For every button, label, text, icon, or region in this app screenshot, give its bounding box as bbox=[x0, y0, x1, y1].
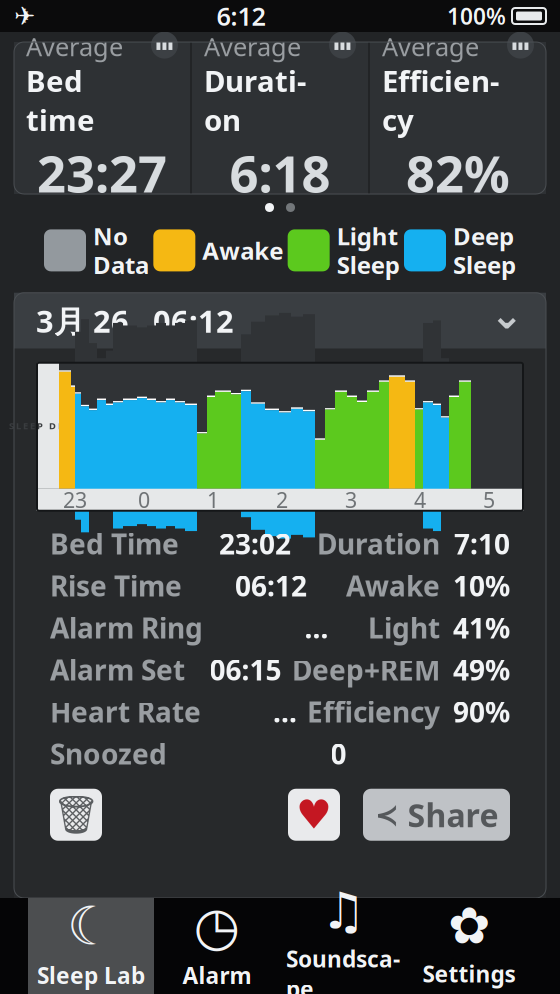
staticText: Bed Time bbox=[50, 525, 179, 562]
button[interactable]: ☾ bbox=[28, 892, 154, 994]
staticText: Efficiency bbox=[382, 61, 499, 139]
staticText: Sleep bbox=[337, 249, 400, 281]
staticText: ✈ bbox=[14, 2, 35, 30]
staticText: Alarm Set bbox=[50, 651, 185, 688]
staticText: Heart Rate bbox=[50, 693, 201, 730]
staticText: Duration bbox=[204, 61, 306, 139]
staticText: 2 bbox=[276, 486, 288, 514]
staticText: Alarm Ring bbox=[50, 609, 203, 646]
staticText: 0 bbox=[138, 486, 150, 514]
button[interactable]: Favorite bbox=[288, 789, 340, 841]
staticText: Sleep Lab bbox=[37, 960, 145, 990]
staticText: Awake bbox=[346, 567, 440, 604]
staticText: 6:18 bbox=[229, 139, 330, 206]
staticText: Soundscape bbox=[286, 944, 400, 994]
staticText: Deep bbox=[453, 220, 514, 252]
staticText: Alarm bbox=[182, 960, 251, 990]
staticText: No bbox=[93, 220, 128, 252]
staticText: 49% bbox=[453, 651, 510, 688]
staticText: 4 bbox=[414, 486, 426, 514]
staticText: ☾ bbox=[67, 896, 115, 956]
staticText: Share bbox=[407, 793, 498, 836]
staticText: Bed time bbox=[26, 61, 95, 139]
staticText: Light bbox=[368, 609, 440, 646]
staticText: Deep+REM bbox=[292, 651, 440, 688]
button[interactable]: Delete bbox=[50, 789, 102, 841]
staticText: Average bbox=[204, 30, 301, 63]
staticText: Awake bbox=[202, 234, 283, 266]
staticText: Average bbox=[382, 30, 479, 63]
staticText: ... bbox=[273, 693, 297, 730]
staticText: 90% bbox=[453, 693, 510, 730]
staticText: 3月 26 06:12 bbox=[36, 300, 234, 341]
staticText: ✿ bbox=[448, 897, 490, 955]
staticText: Settings bbox=[422, 959, 515, 989]
staticText: ♥ bbox=[296, 792, 332, 837]
staticText: ♫ bbox=[320, 882, 365, 940]
staticText: 41% bbox=[453, 609, 510, 646]
staticText: 06:12 bbox=[235, 567, 307, 604]
staticText: ▮▮▮ bbox=[511, 39, 529, 51]
staticText: Data bbox=[93, 249, 149, 281]
staticText: ≺ bbox=[374, 798, 399, 831]
staticText: 7:10 bbox=[454, 525, 510, 562]
staticText: S L E E P D E P T H bbox=[9, 419, 87, 432]
staticText: 3 bbox=[345, 486, 357, 514]
staticText: 23:27 bbox=[37, 139, 167, 206]
staticText: ⌄ bbox=[490, 292, 524, 337]
staticText: Snoozed bbox=[50, 735, 167, 772]
staticText: 0 bbox=[330, 735, 346, 772]
staticText: 23 bbox=[63, 486, 87, 514]
staticText: 10% bbox=[453, 567, 510, 604]
button[interactable]: 3月 26 06:12 bbox=[14, 292, 546, 349]
button[interactable]: ◷ bbox=[154, 892, 280, 994]
button[interactable]: ♫ bbox=[280, 878, 406, 994]
staticText: 6:12 bbox=[216, 0, 265, 33]
staticText: ... bbox=[304, 609, 328, 646]
staticText: 06:15 bbox=[209, 651, 281, 688]
button[interactable]: ≺ bbox=[363, 789, 510, 841]
staticText: Duration bbox=[317, 525, 440, 562]
staticText: Efficiency bbox=[307, 693, 440, 730]
staticText: 23:02 bbox=[219, 525, 291, 562]
staticText: Rise Time bbox=[50, 567, 182, 604]
button[interactable]: Average bbox=[14, 20, 190, 216]
staticText: 1 bbox=[207, 486, 219, 514]
staticText: 5 bbox=[483, 486, 495, 514]
staticText: Average bbox=[26, 30, 123, 63]
staticText: ▮▮▮ bbox=[333, 39, 351, 51]
staticText: Light bbox=[337, 220, 398, 252]
staticText: ◷ bbox=[193, 896, 240, 956]
staticText: 🗑 bbox=[52, 793, 99, 836]
staticText: 100% bbox=[447, 1, 506, 31]
button[interactable]: Average bbox=[370, 20, 546, 216]
staticText: ▮▮▮ bbox=[155, 39, 173, 51]
staticText: 82% bbox=[406, 139, 510, 206]
button[interactable]: Average bbox=[192, 20, 368, 216]
staticText: Sleep bbox=[453, 249, 516, 281]
button[interactable]: ✿ bbox=[406, 893, 532, 994]
